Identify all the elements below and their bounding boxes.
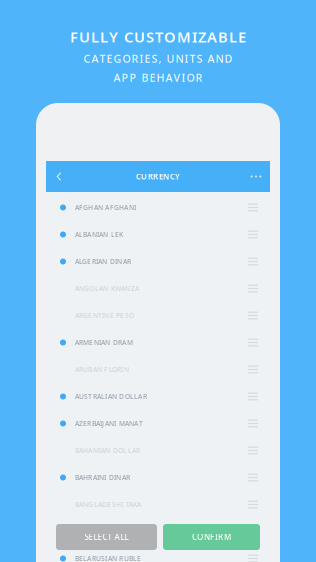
staticText: BANG LADE SHI TAKA (75, 500, 141, 509)
button[interactable]: ALGE RIAN DIN AR (46, 248, 270, 275)
button[interactable]: BARB ADIA N DO LLAR (46, 518, 270, 545)
button[interactable]: BAHR AINI DIN AR (46, 464, 270, 491)
staticText: AUST RALI AN D OLLA R (75, 392, 147, 401)
button[interactable]: ARME NIAN DRA M (46, 329, 270, 356)
staticText: CU RR EN CY (136, 171, 180, 182)
button[interactable]: ALBA NIAN LEK (46, 221, 270, 248)
staticText: SE LE CT A LL (84, 532, 128, 542)
staticText: BARB ADIA N DO LLAR (75, 527, 142, 536)
button[interactable]: ARGE NTIN E PE SO (46, 302, 270, 329)
button[interactable]: SE LE CT A LL (56, 524, 157, 550)
staticText: A P P B E H A V I O R (113, 71, 202, 85)
staticText: ALBA NIAN LEK (75, 230, 123, 239)
button[interactable]: AFGH AN A FGHA NI (46, 194, 270, 221)
button[interactable]: AUST RALI AN D OLLA R (46, 383, 270, 410)
staticText: AZER BAIJ ANI MANA T (75, 419, 143, 428)
staticText: BELA RUSI AN R UBLE (75, 554, 141, 562)
staticText: ARUB AN F LORI N (75, 365, 129, 374)
staticText: ANGO LAN KWAN ZA (75, 284, 139, 293)
staticText: AFGH AN A FGHA NI (75, 203, 136, 212)
button[interactable]: BELA RUSI AN R UBLE (46, 545, 270, 562)
staticText: BAHA MIAN DOL LAR (75, 446, 140, 455)
staticText: CO NF IR M (192, 532, 231, 542)
button[interactable]: CO NF IR M (163, 524, 260, 550)
button[interactable]: More options (242, 161, 270, 192)
staticText: BAHR AINI DIN AR (75, 473, 130, 482)
button[interactable]: BAHA MIAN DOL LAR (46, 437, 270, 464)
button[interactable]: BANG LADE SHI TAKA (46, 491, 270, 518)
staticText: ALGE RIAN DIN AR (75, 257, 131, 266)
button[interactable]: Back (46, 161, 72, 192)
staticText: F U L L Y C U S T O M I Z A B L E (70, 27, 246, 46)
staticText: ARME NIAN DRA M (75, 338, 133, 347)
staticText: ARGE NTIN E PE SO (75, 311, 134, 320)
button[interactable]: AZER BAIJ ANI MANA T (46, 410, 270, 437)
button[interactable]: ARUB AN F LORI N (46, 356, 270, 383)
staticText: C A T E G O R I E S , U N I T S A N D (83, 51, 232, 66)
button[interactable]: ANGO LAN KWAN ZA (46, 275, 270, 302)
